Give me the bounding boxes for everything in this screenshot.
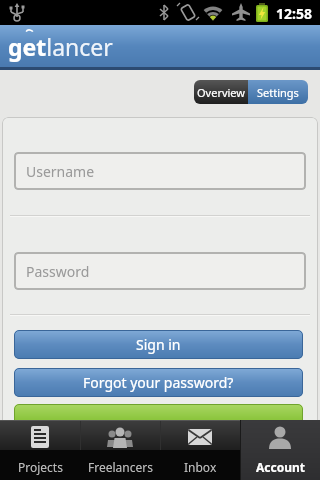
button[interactable]: Freelancers: [80, 420, 160, 480]
button[interactable]: Password: [14, 252, 306, 290]
staticText: Projects: [18, 459, 63, 475]
button[interactable]: Inbox: [160, 420, 240, 480]
button[interactable]: Forgot your password?: [14, 368, 303, 397]
button[interactable]: Sign in: [14, 330, 303, 359]
button[interactable]: [14, 404, 303, 433]
button[interactable]: Account: [240, 420, 320, 480]
staticText: Username: [26, 162, 95, 181]
button[interactable]: Settings: [248, 80, 308, 104]
button[interactable]: Username: [14, 152, 306, 190]
staticText: 12:58: [276, 4, 312, 23]
staticText: Account: [256, 459, 305, 475]
button[interactable]: Overview: [194, 80, 248, 104]
staticText: Overview: [197, 85, 245, 100]
staticText: getlancer: [8, 31, 113, 62]
staticText: Forgot your password?: [83, 373, 234, 392]
staticText: Settings: [257, 85, 299, 100]
staticText: Inbox: [184, 459, 217, 475]
staticText: Sign in: [136, 335, 181, 354]
staticText: Freelancers: [88, 459, 153, 475]
button[interactable]: Projects: [0, 420, 80, 480]
staticText: Password: [26, 262, 90, 281]
